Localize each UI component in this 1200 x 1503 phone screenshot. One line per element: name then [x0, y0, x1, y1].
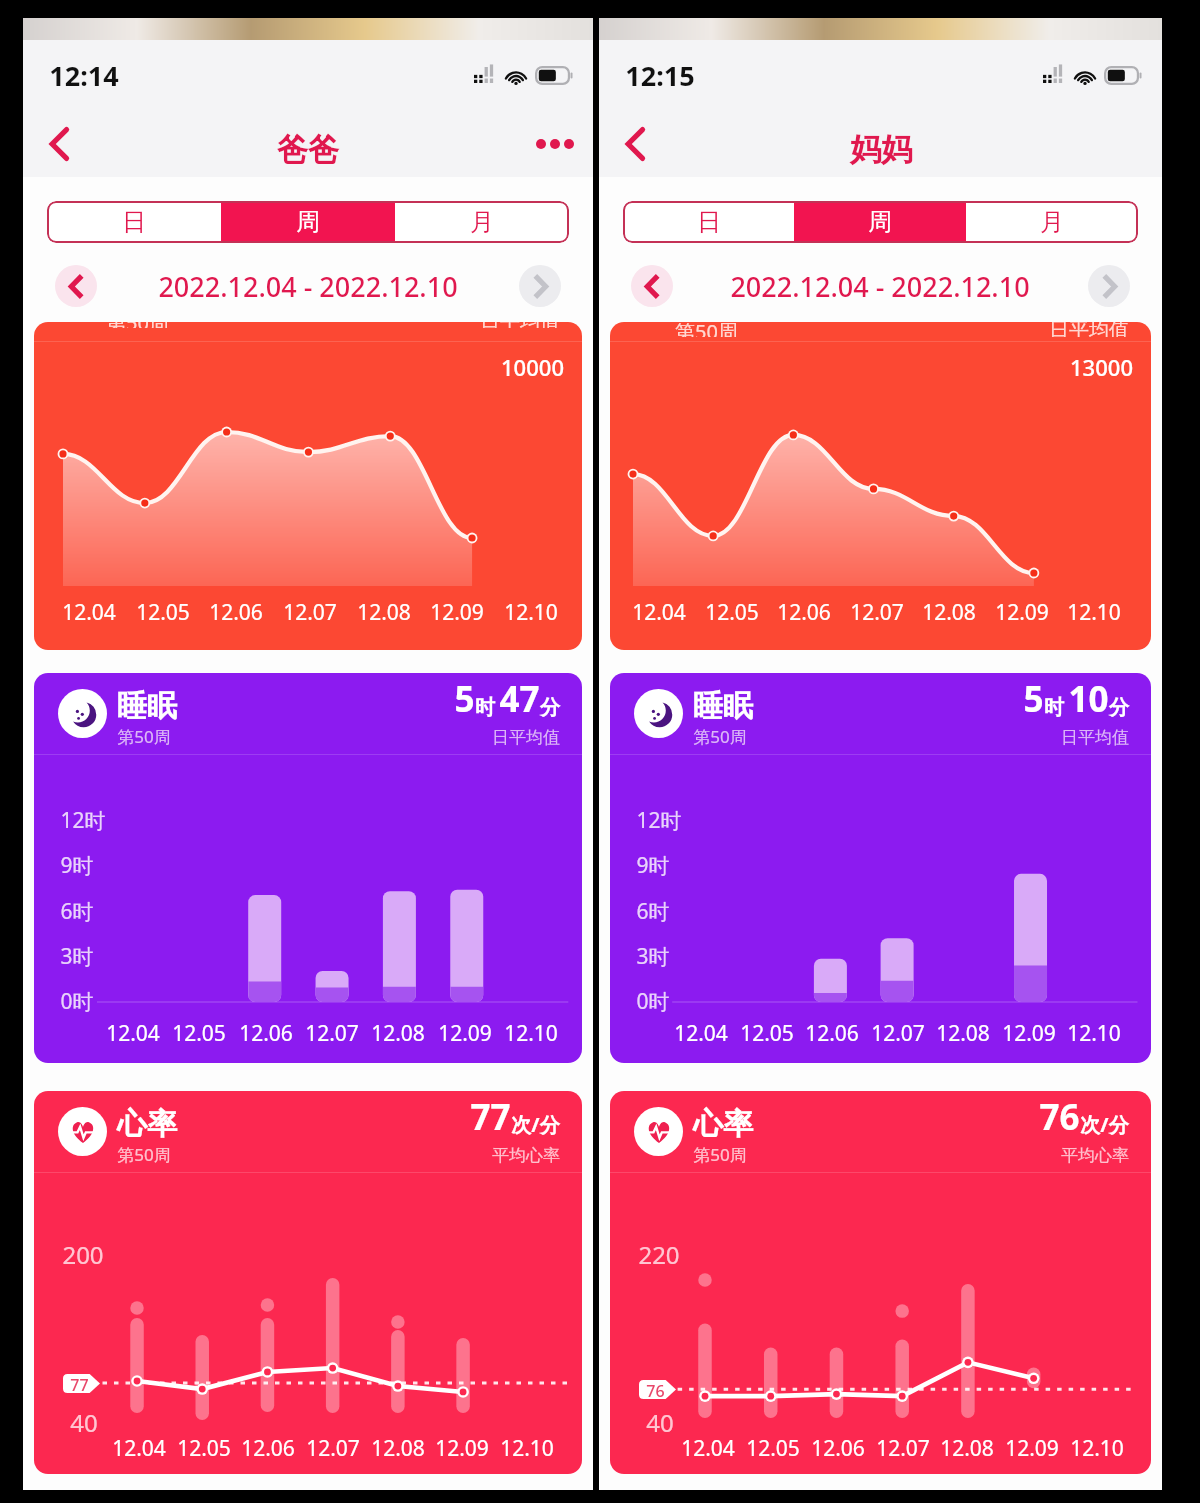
staticText: 日平均值: [1049, 322, 1129, 337]
staticText: 12.04: [632, 598, 686, 627]
staticText: 10: [1068, 675, 1109, 723]
staticText: 12.09: [435, 1434, 489, 1463]
staticText: 6时: [60, 897, 94, 926]
staticText: 12.07: [305, 1019, 359, 1048]
staticText: 12.05: [136, 598, 190, 627]
staticText: 40: [646, 1406, 674, 1439]
staticText: 睡眠: [693, 687, 753, 725]
staticText: 12.05: [746, 1434, 800, 1463]
staticText: 12.08: [371, 1434, 425, 1463]
staticText: 日平均值: [1061, 727, 1129, 748]
staticText: 睡眠: [117, 687, 177, 725]
staticText: 3时: [60, 942, 94, 971]
staticText: 77: [470, 1093, 511, 1141]
staticText: 0时: [60, 987, 94, 1016]
staticText: 6时: [636, 897, 670, 926]
staticText: 周: [868, 207, 892, 237]
button[interactable]: Back: [599, 116, 679, 183]
staticText: 12.08: [371, 1019, 425, 1048]
staticText: 日: [697, 207, 721, 237]
staticText: 9时: [60, 851, 94, 880]
staticText: 5: [454, 675, 475, 723]
button[interactable]: 第50周: [34, 322, 582, 650]
staticText: 12.09: [430, 598, 484, 627]
staticText: 12.07: [306, 1434, 360, 1463]
button[interactable]: 日: [47, 201, 221, 243]
button[interactable]: Previous week: [55, 265, 97, 307]
staticText: 220: [638, 1238, 680, 1271]
staticText: 分: [540, 695, 560, 720]
staticText: 12.07: [850, 598, 904, 627]
staticText: 12.07: [871, 1019, 925, 1048]
staticText: 12.04: [681, 1434, 735, 1463]
button[interactable]: 心率: [34, 1091, 582, 1474]
staticText: 12.05: [177, 1434, 231, 1463]
staticText: 12.07: [876, 1434, 930, 1463]
staticText: 76: [646, 1380, 665, 1399]
staticText: 心率: [693, 1105, 753, 1143]
staticText: 月: [470, 207, 494, 237]
staticText: 12.10: [1070, 1434, 1124, 1463]
staticText: 12.08: [357, 598, 411, 627]
staticText: 12.09: [438, 1019, 492, 1048]
staticText: 日平均值: [492, 727, 560, 748]
staticText: 时: [1044, 695, 1064, 720]
staticText: 12.04: [106, 1019, 160, 1048]
staticText: 12.06: [239, 1019, 293, 1048]
staticText: 200: [62, 1238, 104, 1271]
staticText: 12.10: [1067, 598, 1121, 627]
button[interactable]: Next week: [1088, 265, 1130, 307]
button[interactable]: 周: [794, 201, 966, 243]
staticText: 12.04: [674, 1019, 728, 1048]
button[interactable]: Next week: [519, 265, 561, 307]
staticText: 5: [1023, 675, 1044, 723]
staticText: 12.10: [504, 1019, 558, 1048]
staticText: 第50周: [675, 322, 738, 337]
staticText: 日平均值: [480, 322, 560, 328]
staticText: 47: [499, 675, 540, 723]
staticText: 心率: [117, 1105, 177, 1143]
staticText: 12.05: [172, 1019, 226, 1048]
staticText: 12.10: [1067, 1019, 1121, 1048]
staticText: 12.09: [1005, 1434, 1059, 1463]
staticText: 第50周: [693, 725, 747, 748]
staticText: 12.05: [740, 1019, 794, 1048]
staticText: 12.06: [209, 598, 263, 627]
staticText: 月: [1040, 207, 1064, 237]
button[interactable]: 心率: [610, 1091, 1151, 1474]
staticText: 妈妈: [850, 130, 912, 169]
staticText: 12.10: [504, 598, 558, 627]
button[interactable]: Previous week: [631, 265, 673, 307]
button[interactable]: 日: [623, 201, 794, 243]
staticText: 周: [296, 207, 320, 237]
staticText: 第50周: [117, 1143, 171, 1166]
staticText: 第50周: [106, 322, 169, 328]
staticText: 平均心率: [492, 1145, 560, 1166]
button[interactable]: 月: [395, 201, 569, 243]
staticText: 第50周: [693, 1143, 747, 1166]
button[interactable]: Back: [23, 116, 103, 183]
staticText: 2022.12.04 - 2022.12.10: [730, 268, 1030, 305]
staticText: 12.06: [241, 1434, 295, 1463]
staticText: 3时: [636, 942, 670, 971]
staticText: 12.08: [922, 598, 976, 627]
staticText: 爸爸: [277, 130, 339, 169]
button[interactable]: 第50周: [610, 322, 1151, 650]
staticText: 平均心率: [1061, 1145, 1129, 1166]
staticText: 2022.12.04 - 2022.12.10: [158, 268, 458, 305]
button[interactable]: 月: [966, 201, 1138, 243]
staticText: 12.06: [777, 598, 831, 627]
button[interactable]: 睡眠: [34, 673, 582, 1063]
staticText: 10000: [501, 352, 564, 382]
staticText: 12.06: [805, 1019, 859, 1048]
staticText: 12.08: [940, 1434, 994, 1463]
staticText: 12时: [636, 806, 682, 835]
button[interactable]: More options: [507, 116, 593, 183]
button[interactable]: 周: [221, 201, 395, 243]
staticText: 12时: [60, 806, 106, 835]
button[interactable]: 睡眠: [610, 673, 1151, 1063]
staticText: 9时: [636, 851, 670, 880]
staticText: 12.07: [283, 598, 337, 627]
staticText: 12.04: [62, 598, 116, 627]
staticText: 日: [122, 207, 146, 237]
